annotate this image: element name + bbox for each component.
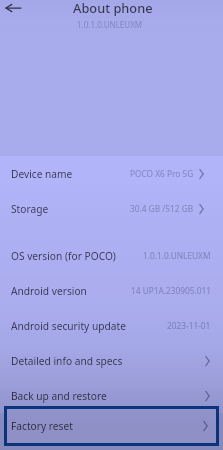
staticText: 30.4 GB /512 GB bbox=[130, 203, 194, 214]
staticText: POCO X6 Pro 5G bbox=[130, 168, 194, 179]
button[interactable]: Android version bbox=[0, 273, 223, 308]
staticText: 1.0.1.0.UNLEUXM bbox=[77, 19, 143, 30]
button[interactable]: Storage bbox=[0, 191, 223, 226]
staticText: Storage bbox=[11, 202, 49, 216]
button[interactable]: Factory reset bbox=[4, 406, 219, 446]
button[interactable]: Back bbox=[4, 1, 23, 14]
staticText: 14 UP1A.230905.011 bbox=[131, 285, 211, 296]
staticText: About phone bbox=[73, 0, 153, 16]
button[interactable]: Android security update bbox=[0, 308, 223, 343]
staticText: Android version bbox=[11, 284, 87, 298]
staticText: 1.0.1.0.UNLEUXM bbox=[143, 250, 211, 261]
button[interactable]: OS version (for POCO) bbox=[0, 238, 223, 273]
staticText: Back up and restore bbox=[11, 389, 107, 403]
staticText: Detailed info and specs bbox=[11, 354, 123, 368]
staticText: OS version (for POCO) bbox=[11, 249, 116, 263]
button[interactable]: Back up and restore bbox=[0, 378, 223, 413]
staticText: 2023-11-01 bbox=[167, 320, 211, 331]
staticText: Factory reset bbox=[11, 419, 73, 433]
staticText: Device name bbox=[11, 167, 73, 181]
button[interactable]: Detailed info and specs bbox=[0, 343, 223, 378]
staticText: Android security update bbox=[11, 319, 126, 333]
button[interactable]: Device name bbox=[0, 156, 223, 191]
